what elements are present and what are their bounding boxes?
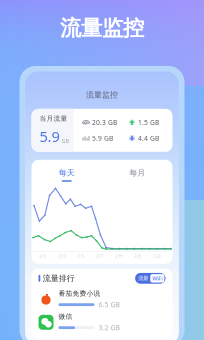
staticText: 每月 — [129, 168, 145, 178]
staticText: 流量监控 — [86, 90, 118, 100]
staticText: 4.4 GB — [138, 134, 159, 143]
staticText: 当月流量 — [39, 114, 67, 123]
button[interactable]: 微信 — [31, 311, 172, 334]
staticText: GB — [61, 137, 68, 145]
button[interactable]: 番茄免费小说 — [31, 288, 172, 311]
staticText: 6.5 GB — [98, 300, 119, 309]
staticText: 流量监控 — [60, 15, 144, 41]
staticText: 2.21 — [134, 253, 141, 259]
staticText: 微信 — [58, 313, 72, 321]
staticText: WiFi — [152, 275, 162, 282]
button[interactable]: WiFi — [150, 274, 164, 282]
button[interactable]: 每天 — [31, 164, 102, 186]
staticText: 2.15 — [77, 253, 84, 259]
staticText: 番茄免费小说 — [58, 290, 100, 298]
staticText: 5.9 — [39, 127, 59, 146]
staticText: 2.23 — [153, 253, 160, 259]
button[interactable]: 流量 — [136, 274, 150, 282]
staticText: 3.2 GB — [98, 323, 119, 332]
staticText: 2.11 — [39, 253, 46, 259]
staticText: 20.3 GB — [92, 118, 117, 127]
staticText: 流量排行 — [43, 273, 75, 283]
staticText: 2.17 — [96, 253, 103, 259]
staticText: 2.13 — [58, 253, 65, 259]
staticText: 每天 — [59, 168, 75, 178]
staticText: 2.19 — [115, 253, 122, 259]
staticText: 1.5 GB — [138, 118, 159, 127]
staticText: 5.9 GB — [92, 134, 113, 143]
button[interactable]: 每月 — [102, 164, 172, 186]
staticText: 流量 — [138, 275, 148, 282]
